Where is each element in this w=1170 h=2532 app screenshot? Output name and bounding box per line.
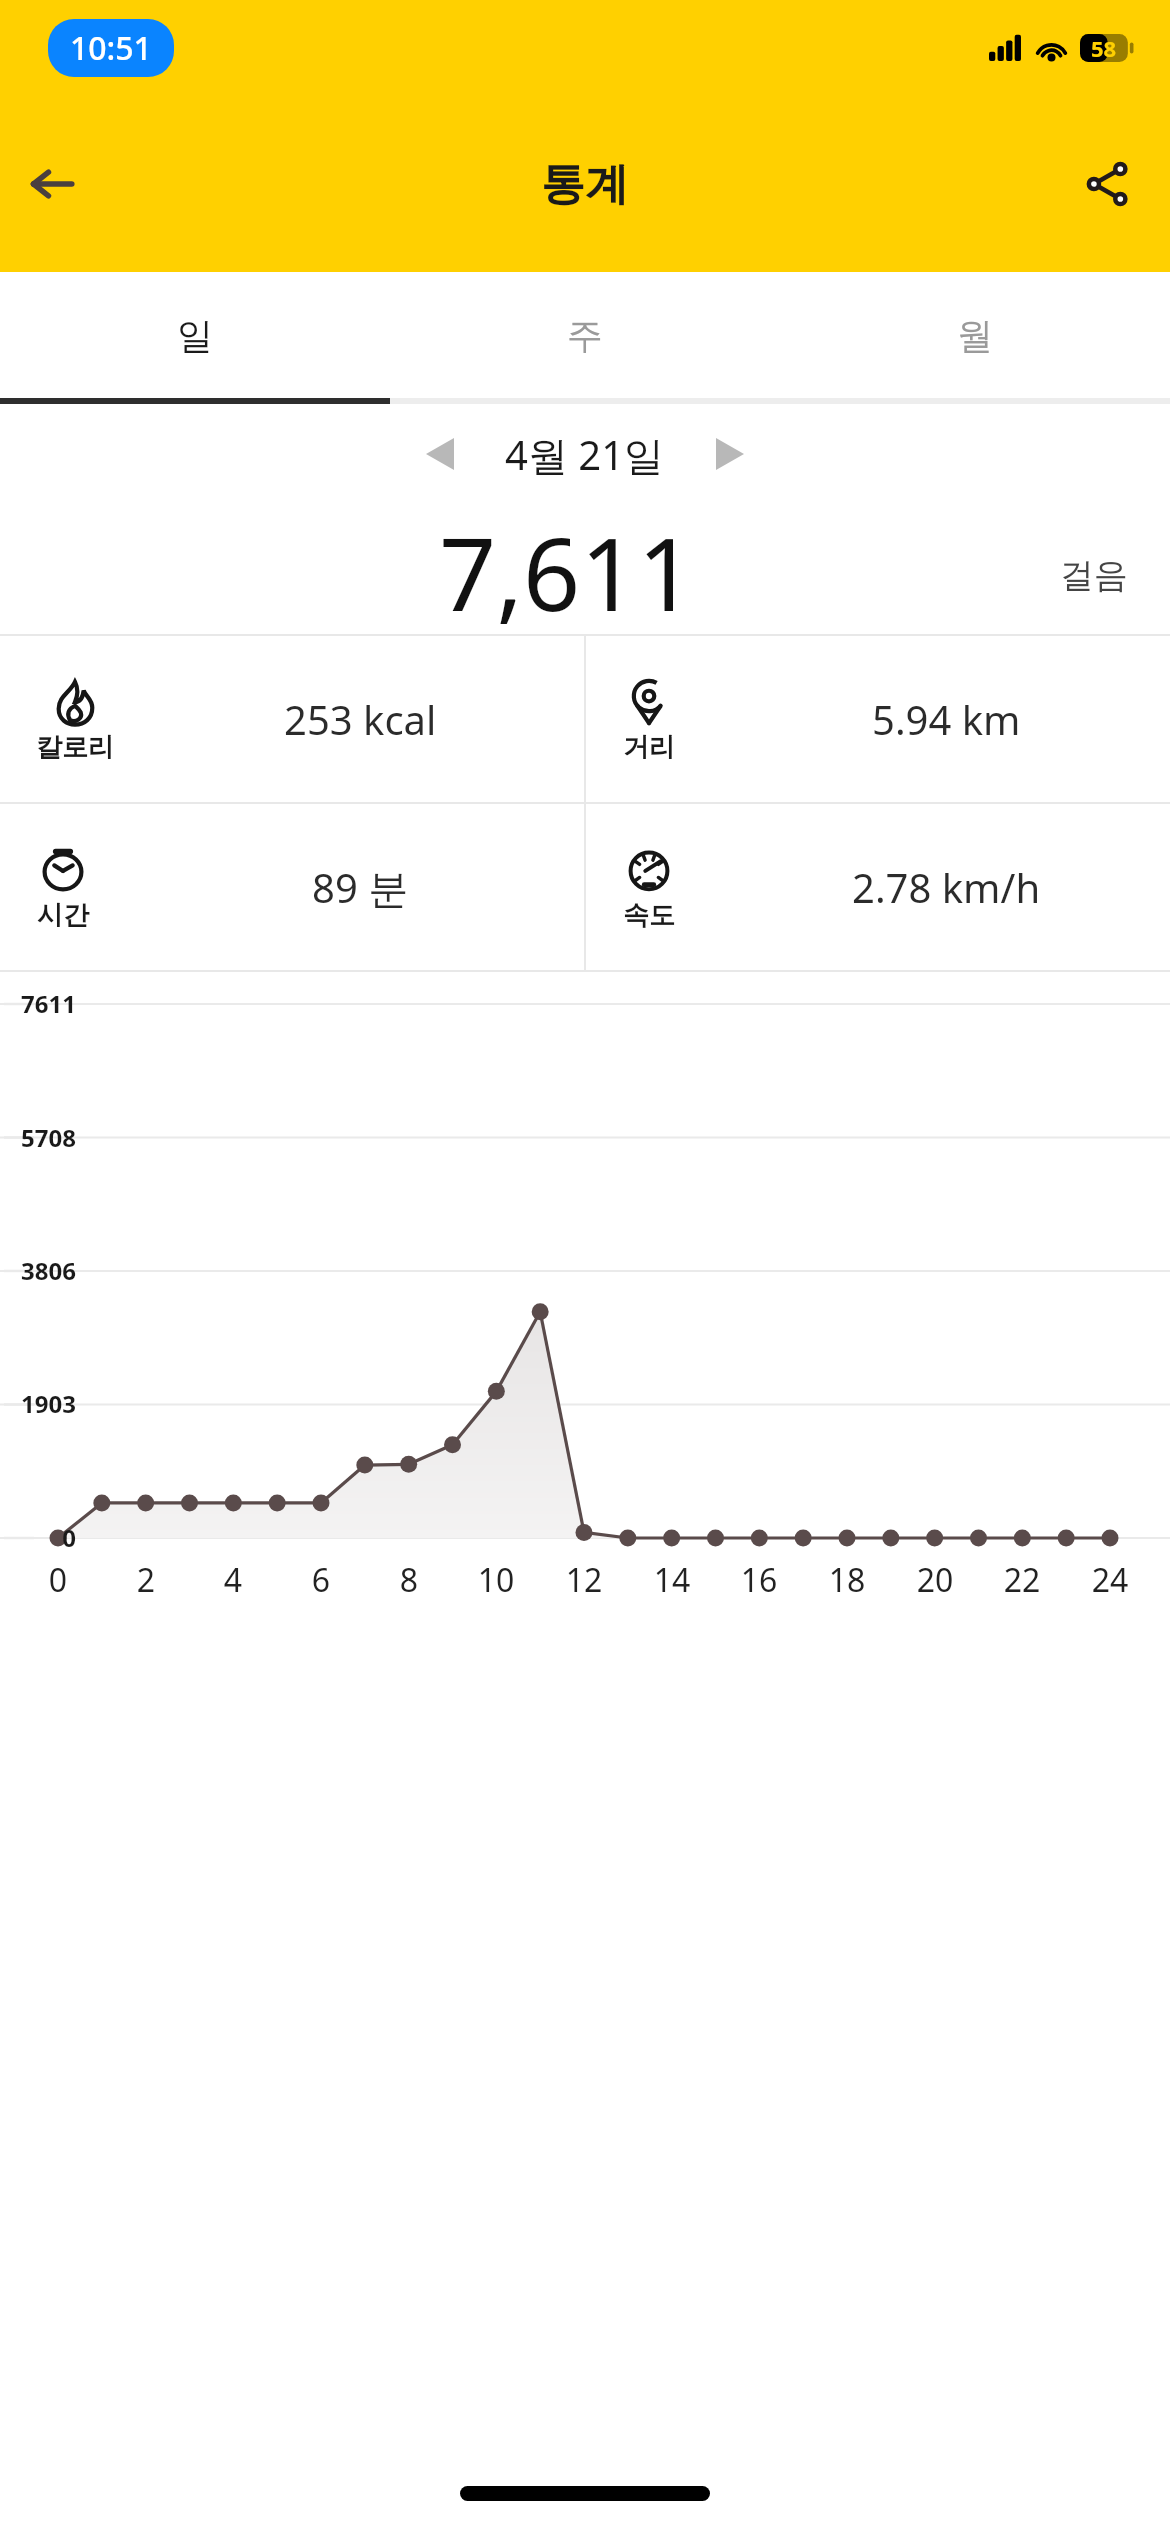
- button[interactable]: 칼로리: [0, 636, 584, 802]
- button[interactable]: 주: [390, 272, 780, 398]
- button[interactable]: Next day: [697, 421, 763, 487]
- staticText: 6: [291, 1558, 351, 1602]
- button[interactable]: 속도: [586, 804, 1170, 970]
- staticText: 2.78 km/h: [852, 860, 1041, 914]
- staticText: 2: [116, 1558, 176, 1602]
- staticText: 253 kcal: [284, 692, 437, 746]
- staticText: 0: [28, 1558, 88, 1602]
- staticText: 10:51: [70, 26, 152, 70]
- staticText: 5.94 km: [872, 692, 1021, 746]
- staticText: 7,611: [439, 504, 695, 634]
- staticText: 1903: [0, 1387, 76, 1420]
- staticText: 거리: [623, 731, 675, 764]
- button[interactable]: Previous day: [407, 421, 473, 487]
- staticText: 3806: [0, 1254, 76, 1287]
- staticText: 통계: [541, 157, 629, 212]
- button[interactable]: Back: [16, 148, 88, 220]
- button[interactable]: 월: [780, 272, 1170, 398]
- staticText: 10: [466, 1558, 526, 1602]
- staticText: 8: [379, 1558, 439, 1602]
- button[interactable]: 시간: [0, 804, 584, 970]
- staticText: 4: [203, 1558, 263, 1602]
- staticText: 14: [642, 1558, 702, 1602]
- staticText: 5708: [0, 1121, 76, 1154]
- staticText: 7611: [0, 987, 76, 1020]
- staticText: 89 분: [312, 860, 409, 915]
- button[interactable]: 거리: [586, 636, 1170, 802]
- staticText: 24: [1080, 1558, 1140, 1602]
- staticText: 월: [957, 313, 993, 358]
- staticText: 4월 21일: [505, 427, 665, 482]
- staticText: 20: [905, 1558, 965, 1602]
- staticText: 속도: [623, 899, 675, 932]
- staticText: 16: [729, 1558, 789, 1602]
- button[interactable]: 일: [0, 272, 390, 398]
- button[interactable]: Share: [1072, 148, 1144, 220]
- staticText: 22: [992, 1558, 1052, 1602]
- staticText: 일: [177, 313, 213, 358]
- staticText: 걸음: [1060, 554, 1128, 597]
- staticText: 0: [0, 1521, 76, 1554]
- staticText: 18: [817, 1558, 877, 1602]
- staticText: 12: [554, 1558, 614, 1602]
- staticText: 58: [1091, 33, 1117, 63]
- staticText: 주: [567, 313, 603, 358]
- staticText: 칼로리: [36, 731, 114, 764]
- staticText: 시간: [37, 899, 89, 932]
